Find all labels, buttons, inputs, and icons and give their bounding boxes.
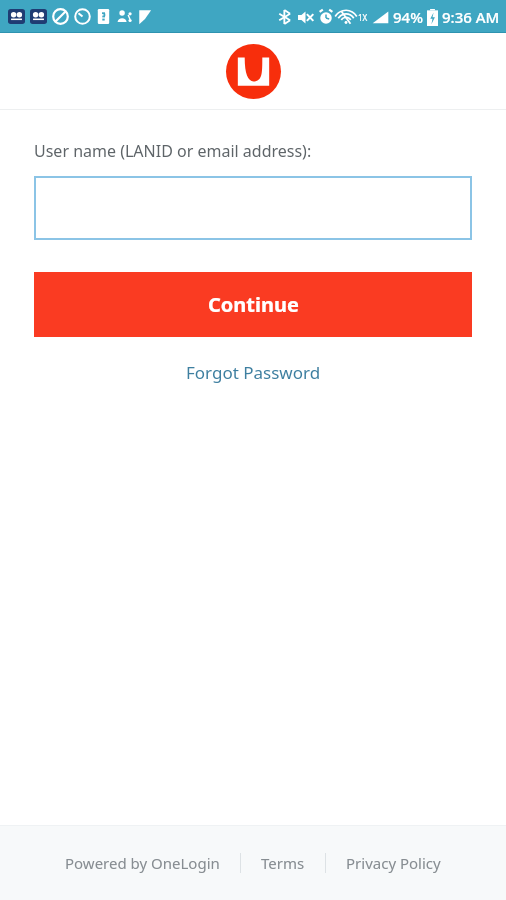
staticText: 94% — [393, 7, 423, 27]
staticText: Privacy Policy — [346, 853, 441, 873]
button[interactable]: Continue — [34, 272, 472, 337]
staticText: 1X — [358, 12, 368, 23]
staticText: Forgot Password — [186, 361, 321, 384]
staticText: 9:36 AM — [442, 7, 500, 27]
button[interactable]: User name input field — [34, 176, 472, 240]
staticText: User name (LANID or email address): — [34, 140, 312, 162]
button[interactable]: Forgot Password — [170, 355, 337, 390]
button[interactable]: Terms — [251, 845, 315, 881]
staticText: Continue — [208, 291, 299, 318]
button[interactable]: Powered by OneLogin — [55, 845, 230, 881]
staticText: Powered by OneLogin — [65, 853, 220, 873]
staticText: Terms — [261, 853, 305, 873]
other: Herman Miller logo — [226, 44, 281, 99]
button[interactable]: Privacy Policy — [336, 845, 451, 881]
